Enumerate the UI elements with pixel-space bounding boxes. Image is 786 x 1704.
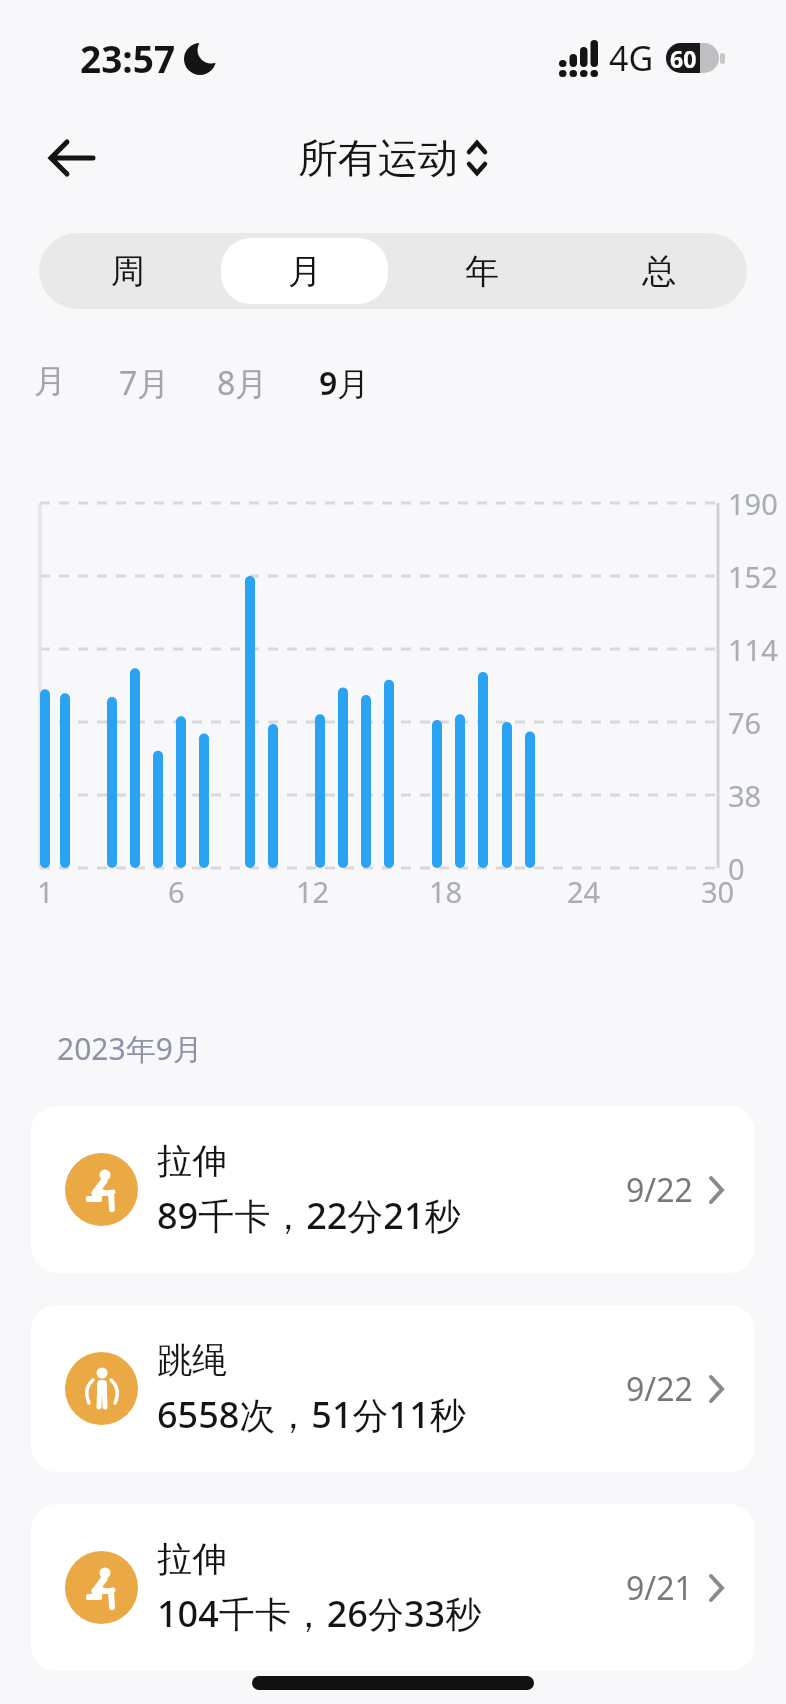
staticText: 60 [670, 43, 697, 73]
button[interactable] [40, 126, 104, 190]
staticText: 12 [296, 872, 330, 911]
staticText: 4G [609, 35, 654, 81]
staticText: 38 [728, 776, 762, 814]
staticText: 89千卡，22分21秒 [157, 1191, 461, 1240]
button[interactable]: 月 [0, 361, 102, 401]
staticText: 76 [728, 703, 762, 741]
staticText: 7月 [119, 361, 170, 405]
staticText: 1 [37, 872, 54, 911]
staticText: 年 [465, 250, 499, 293]
staticText: 9/22 [626, 1367, 693, 1411]
button[interactable]: 所有运动 [298, 133, 488, 183]
staticText: 18 [429, 872, 463, 911]
button[interactable]: 拉伸 [31, 1504, 755, 1671]
staticText: 0 [728, 849, 745, 887]
staticText: 月 [34, 361, 66, 401]
staticText: 跳绳 [157, 1338, 227, 1382]
button[interactable]: 7月 [92, 361, 196, 405]
staticText: 拉伸 [157, 1537, 227, 1581]
staticText: 190 [728, 484, 778, 522]
staticText: 114 [728, 630, 778, 668]
staticText: 9/22 [626, 1168, 693, 1212]
staticText: 6558次，51分11秒 [157, 1390, 466, 1439]
staticText: 6 [168, 872, 185, 911]
staticText: 23:57 [80, 33, 176, 83]
button[interactable]: 周 [44, 238, 211, 304]
button[interactable]: 拉伸 [31, 1106, 755, 1273]
staticText: 30 [701, 872, 735, 911]
staticText: 周 [111, 250, 145, 293]
staticText: 152 [728, 557, 778, 595]
button[interactable]: 总 [575, 238, 742, 304]
button[interactable]: 跳绳 [31, 1305, 755, 1472]
staticText: 104千卡，26分33秒 [157, 1589, 482, 1638]
staticText: 24 [567, 872, 601, 911]
staticText: 9月 [319, 361, 370, 405]
staticText: 所有运动 [298, 133, 458, 183]
button[interactable]: 年 [398, 238, 565, 304]
staticText: 2023年9月 [57, 1028, 203, 1069]
staticText: 月 [288, 250, 322, 293]
button[interactable]: 9月 [292, 361, 396, 405]
staticText: 拉伸 [157, 1139, 227, 1183]
staticText: 8月 [217, 361, 268, 405]
button[interactable]: 8月 [190, 361, 294, 405]
staticText: 总 [642, 250, 676, 293]
staticText: 9/21 [626, 1566, 693, 1610]
button[interactable]: 月 [221, 238, 388, 304]
